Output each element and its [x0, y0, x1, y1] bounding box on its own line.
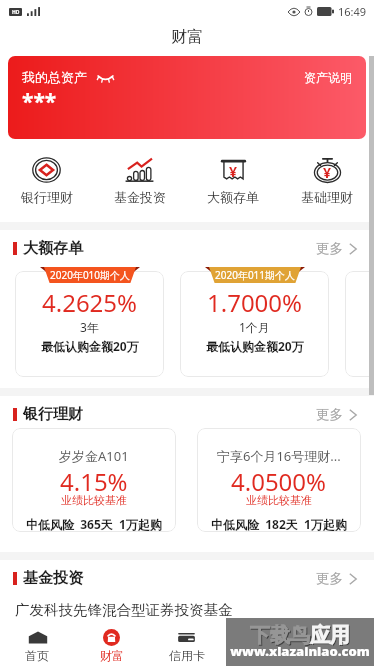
staticText: 业绩比较基准 [61, 493, 127, 507]
staticText: 生活 [250, 648, 274, 663]
button[interactable]: ¥ [186, 139, 280, 222]
staticText: 基金投资 [23, 569, 83, 588]
button[interactable]: 基金投资 [93, 139, 186, 222]
button[interactable]: 更多 [316, 240, 357, 257]
staticText: 2020年010期个人 [50, 268, 131, 282]
button[interactable]: 银行理财 [0, 139, 93, 222]
button[interactable]: 宁享6个月16号理财... [197, 428, 361, 532]
staticText: 最低认购金额20万 [206, 338, 304, 354]
staticText: 3年 [80, 319, 99, 335]
staticText: 中低风险 365天 1万起购 [26, 516, 162, 532]
button[interactable]: 1.7000% [180, 271, 329, 377]
staticText: 银行理财 [21, 189, 73, 205]
staticText: ¥ [229, 162, 238, 181]
button[interactable]: 财富 [74, 620, 149, 666]
staticText: ¥ [323, 163, 332, 182]
staticText: 4.0500% [231, 465, 327, 498]
staticText: 基础理财 [301, 189, 353, 205]
staticText: 4.2625% [42, 286, 138, 319]
staticText: HD [12, 9, 20, 16]
staticText: 下载鸟 [250, 623, 310, 648]
button[interactable]: 更多 [316, 406, 357, 423]
button[interactable]: 隐藏金额 [97, 71, 114, 84]
button[interactable]: 我的总资产 [8, 56, 366, 139]
staticText: 信用卡 [169, 648, 205, 663]
staticText: 大额存单 [23, 239, 83, 258]
staticText: 更多 [316, 240, 343, 257]
staticText: *** [22, 87, 57, 116]
staticText: 财富 [171, 27, 203, 47]
button[interactable]: 首页 [0, 620, 74, 666]
staticText: 岁岁金A101 [59, 447, 129, 465]
button[interactable]: 2.2500% [345, 271, 374, 377]
button[interactable]: 更多 [316, 570, 357, 587]
button[interactable]: ¥ [280, 139, 374, 222]
staticText: 基金投资 [114, 189, 166, 205]
staticText: 首页 [25, 648, 49, 663]
staticText: 财富 [100, 648, 124, 663]
staticText: 中低风险 182天 1万起购 [211, 516, 347, 532]
staticText: 4.15% [60, 465, 128, 498]
staticText: 大额存单 [207, 189, 259, 205]
staticText: 1.7000% [207, 286, 303, 319]
staticText: 16:49 [338, 4, 367, 19]
staticText: 银行理财 [23, 405, 83, 424]
staticText: 最低认购金额20万 [41, 338, 139, 354]
staticText: 下载鸟 [251, 624, 311, 649]
button[interactable]: 4.2625% [15, 271, 164, 377]
button[interactable]: 岁岁金A101 [12, 428, 176, 532]
staticText: 1个月 [239, 319, 270, 335]
staticText: 2020年011期个人 [215, 268, 296, 282]
staticText: 应用 [311, 624, 351, 649]
staticText: 宁享6个月16号理财... [217, 447, 341, 465]
button[interactable]: 我的 [299, 620, 374, 666]
button[interactable]: 生活 [224, 620, 299, 666]
staticText: 应用 [310, 623, 350, 648]
staticText: 我的 [325, 648, 349, 663]
staticText: 广发科技先锋混合型证券投资基金 [15, 601, 233, 619]
staticText: www.xlazainiao.com [230, 642, 370, 660]
staticText: 更多 [316, 406, 343, 423]
staticText: 业绩比较基准 [246, 493, 312, 507]
staticText: 更多 [316, 570, 343, 587]
button[interactable]: 信用卡 [149, 620, 224, 666]
staticText: 我的总资产 [22, 69, 87, 85]
button[interactable]: 资产说明 [304, 70, 352, 85]
